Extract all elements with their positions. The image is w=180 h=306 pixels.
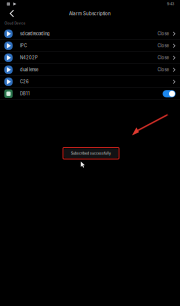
button[interactable]: C26 [0,76,180,88]
button[interactable]: dual lense [0,64,180,76]
button[interactable]: sdcardrecording [0,28,180,40]
staticText: 9:43 [167,2,174,6]
staticText: Close [157,43,168,48]
button[interactable]: IPC [0,40,180,52]
staticText: N4202P [20,55,38,60]
staticText: Close [157,31,168,36]
staticText: Alarm Subscription [69,11,111,16]
staticText: sdcardrecording [20,31,50,36]
staticText: DB11 [20,91,30,96]
staticText: C26 [20,79,29,84]
staticText: dual lense [20,67,38,72]
button[interactable]: N4202P [0,52,180,64]
staticText: IPC [20,43,27,48]
staticText: Subscribed successfully [71,151,111,155]
staticText: Close [157,67,168,72]
staticText: Cloud Device [5,22,26,25]
staticText: Close [157,55,168,60]
button[interactable]: DB11 [0,88,180,100]
button[interactable]: Back [0,8,23,19]
